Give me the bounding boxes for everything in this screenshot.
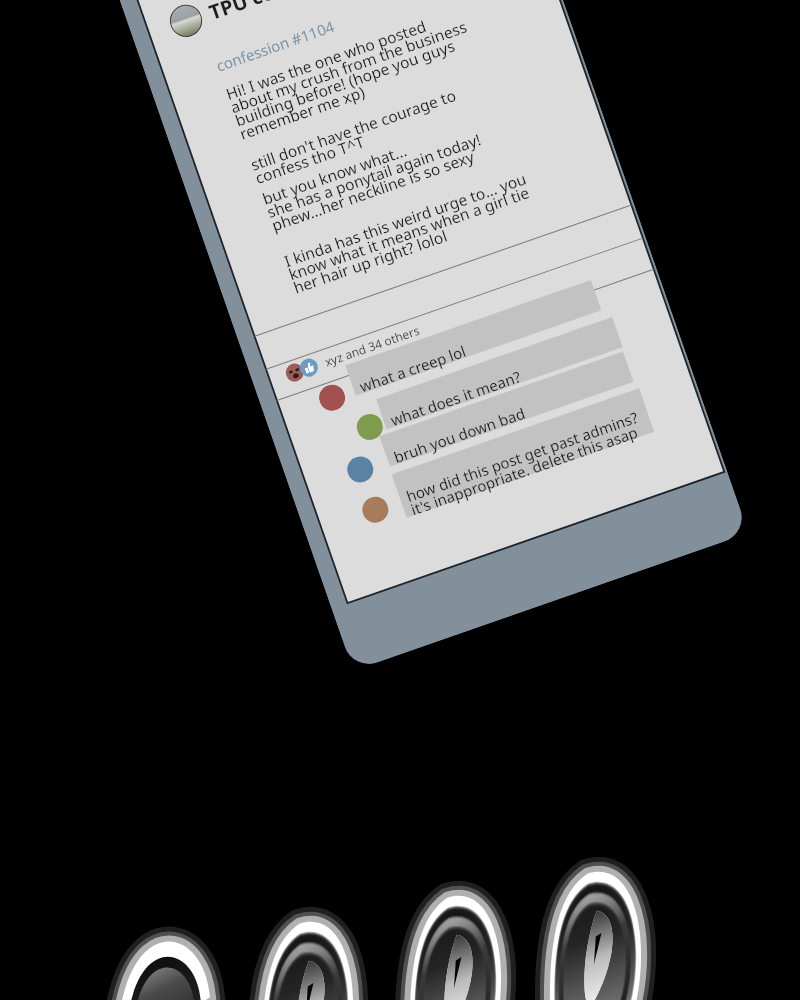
staticText: xyz and 34 others xyxy=(322,322,422,370)
staticText: Hi! I was the one who posted about my cr… xyxy=(223,2,479,145)
button[interactable]: what does it mean? xyxy=(376,317,623,429)
staticText: but you know what... she has a ponytail … xyxy=(259,115,488,236)
staticText: what does it mean? xyxy=(388,366,524,430)
staticText: confession #1104 xyxy=(213,16,337,76)
staticText: still don't have the courage to confess … xyxy=(248,84,463,189)
staticText: TPU confessions xyxy=(205,0,367,26)
staticText: bruh you down bad xyxy=(391,403,528,467)
button[interactable]: Angry reaction xyxy=(283,321,422,384)
button[interactable]: bruh you down bad xyxy=(379,351,634,466)
button[interactable]: TPU confessions xyxy=(166,0,368,41)
button[interactable]: how did this post get past admins? it's … xyxy=(392,388,654,518)
button[interactable]: what a creep lol xyxy=(345,280,601,396)
other: Like reaction xyxy=(297,356,320,379)
staticText: what a creep lol xyxy=(357,341,469,396)
staticText: I kinda has this weird urge to... you kn… xyxy=(281,167,538,299)
staticText: how did this post get past admins? it's … xyxy=(403,407,646,520)
other: Angry reaction xyxy=(283,361,306,384)
